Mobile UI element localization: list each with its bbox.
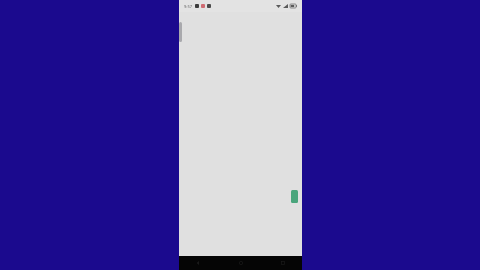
button[interactable]: Scroll indicator xyxy=(291,190,298,203)
button[interactable]: Recent apps xyxy=(274,256,292,270)
staticText: 9:57 xyxy=(184,4,192,9)
